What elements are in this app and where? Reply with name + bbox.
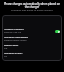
button[interactable]: Adaptive charging xyxy=(4,27,60,35)
button[interactable]: Battery saver xyxy=(4,43,60,51)
staticText: Battery saver xyxy=(4,44,19,47)
staticText: Finish by 7:00 AM xyxy=(4,31,22,34)
staticText: Off xyxy=(4,47,8,50)
button[interactable]: Charging sounds xyxy=(4,51,60,59)
button[interactable]: Charging optimisation xyxy=(4,35,60,43)
staticText: Charging may pause to protect battery xyxy=(5,9,59,12)
button[interactable]: Toggle adaptive charging xyxy=(55,30,60,33)
staticText: Charging sounds xyxy=(4,52,23,55)
staticText: Phone charges automatically when placed … xyxy=(3,2,61,8)
staticText: Charging optimisation xyxy=(4,36,29,39)
staticText: Protects battery health xyxy=(4,39,27,42)
staticText: Adaptive charging xyxy=(4,28,24,31)
staticText: On xyxy=(4,55,7,58)
